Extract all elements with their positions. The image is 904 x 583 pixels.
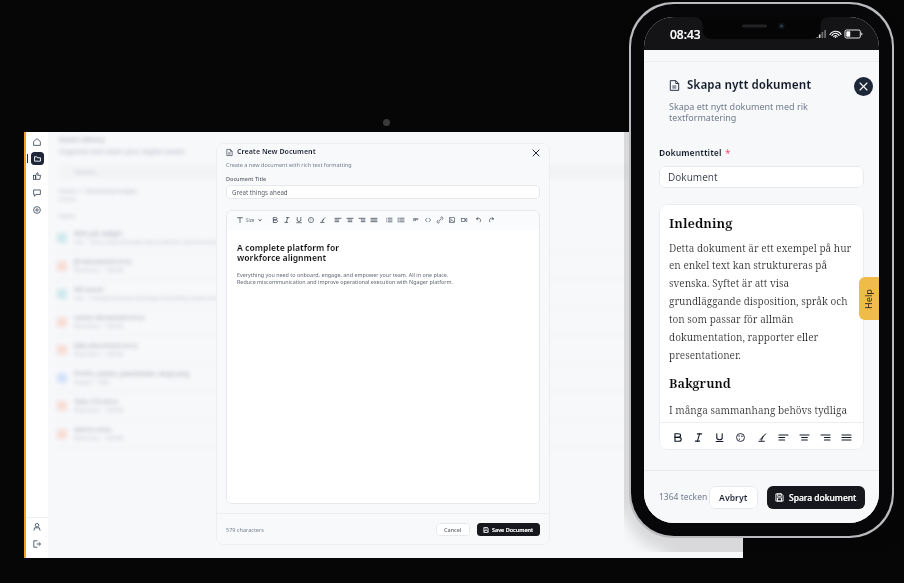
staticText: Home > Marketing Images [59,187,138,195]
button[interactable]: Help [859,277,879,320]
staticText: Search... [75,168,99,176]
staticText: Help [862,289,874,309]
staticText: Link • Add a responsive jobs view to web… [74,239,262,246]
staticText: 0 Bytes [675,262,692,269]
button[interactable]: Documents [26,150,48,167]
staticText: Avbryt [719,492,748,504]
button[interactable]: format [667,427,687,447]
button[interactable]: Great things ahead [226,185,540,199]
button[interactable]: Close [854,77,873,96]
staticText: 0 Bytes [675,318,692,325]
staticText: Great things ahead [232,188,288,196]
button[interactable]: format [794,427,814,447]
button[interactable]: Cancel [436,523,470,536]
button[interactable]: format [485,214,497,226]
button[interactable]: Close [530,147,542,159]
button[interactable]: format [305,214,317,226]
staticText: Upload [630,135,649,142]
button[interactable]: Log out [26,535,48,552]
staticText: Save Document [492,526,534,533]
staticText: Asset Library [59,135,105,145]
staticText: Link • A simple directory that keeps onb… [74,295,296,302]
button[interactable]: format [269,214,281,226]
button[interactable]: Messages [26,184,48,201]
staticText: Dokumenttitel [659,147,722,159]
staticText: 1364 tecken [659,491,708,503]
staticText: HR board [74,285,104,294]
button[interactable]: Profile [26,518,48,535]
button[interactable]: format [434,214,446,226]
staticText: Create New Document [237,147,316,157]
button[interactable]: format [836,427,856,447]
button[interactable]: format [446,214,458,226]
button[interactable]: format [773,427,793,447]
staticText: 579 characters [226,526,264,533]
button[interactable]: Likes [26,167,48,184]
staticText: JD-document.virus [74,257,132,266]
button[interactable]: format [332,214,344,226]
button[interactable]: Spara dokument [767,486,865,509]
button[interactable]: Avbryt [709,486,758,509]
staticText: I många sammanhang behövs tydliga [669,403,848,417]
button[interactable]: Dokument [659,166,864,188]
button[interactable]: Save Document [477,523,540,536]
button[interactable]: format [368,214,380,226]
staticText: Skapa nytt dokument [687,77,812,93]
button[interactable]: format [383,214,395,226]
staticText: Images • PNG [74,379,110,386]
staticText: Admin.virus [74,425,112,434]
button[interactable]: format [344,214,356,226]
button[interactable]: format [688,427,708,447]
staticText: Document Title [226,175,267,182]
staticText: A complete platform for workforce alignm… [237,242,340,264]
staticText: Cancel [444,526,462,533]
button[interactable]: format [752,427,772,447]
staticText: 0 Bytes [675,402,692,409]
staticText: 0 Bytes [675,374,692,381]
staticText: Spara dokument [789,492,857,504]
button[interactable]: format [815,427,835,447]
staticText: Dokument [668,170,718,184]
button[interactable]: format [422,214,434,226]
staticText: 08:43 [670,26,701,42]
staticText: career-document.virus [74,313,145,322]
button[interactable]: Settings [26,201,48,218]
staticText: Skapa ett nytt dokument med rik textform… [669,100,808,124]
staticText: 0 Bytes [675,430,692,437]
button[interactable]: format [293,214,305,226]
button[interactable]: format [709,427,729,447]
staticText: Task-123.virus [74,397,118,406]
button[interactable]: format [356,214,368,226]
button[interactable]: format [730,427,750,447]
staticText: Web job widget [74,229,123,238]
button[interactable]: Home [26,133,48,150]
staticText: Bakgrund [669,375,731,392]
button[interactable]: format [458,214,470,226]
staticText: Size [677,212,688,219]
button[interactable]: format [234,214,246,226]
staticText: Everything you need to onboard, engage, … [237,271,453,285]
staticText: Organise and share your digital assets [59,147,185,157]
button[interactable]: format [317,214,329,226]
staticText: Inledning [669,214,733,232]
button[interactable]: format [395,214,407,226]
staticText: Create a new document with rich text for… [226,161,352,168]
button[interactable]: format [281,214,293,226]
staticText: Detta dokument är ett exempel på hur en … [669,241,854,362]
staticText: Profile_avatar_placeholder_large.png [74,369,189,378]
button[interactable]: format [473,214,485,226]
staticText: Size [246,217,255,223]
button[interactable]: format [410,214,422,226]
staticText: b&b-document.virus [74,341,138,350]
staticText: Search [703,168,721,175]
